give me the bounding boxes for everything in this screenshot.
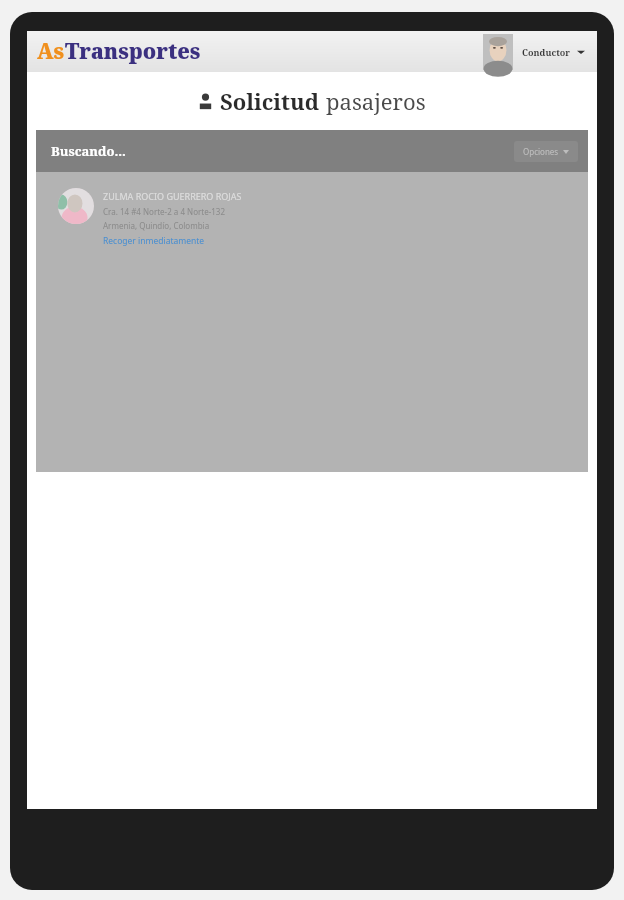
staticText: pasajeros [326, 86, 426, 116]
staticText: Armenia, Quindío, Colombia [103, 220, 210, 231]
button[interactable]: Conductor [483, 34, 589, 70]
button[interactable]: Opciones [514, 141, 578, 162]
staticText: Transportes [65, 37, 201, 66]
staticText: Opciones [523, 146, 559, 157]
button[interactable]: AsTransportes inicio [35, 33, 203, 70]
button[interactable]: ZULMA ROCIO GUERRERO ROJAS [58, 188, 242, 247]
staticText: Solicitud [220, 86, 319, 116]
staticText: Buscando... [51, 142, 126, 160]
staticText: Cra. 14 #4 Norte-2 a 4 Norte-132 [103, 206, 225, 217]
staticText: As [37, 37, 65, 66]
button[interactable]: Recoger inmediatamente [103, 235, 205, 247]
staticText: Conductor [522, 46, 571, 58]
staticText: Recoger inmediatamente [103, 235, 205, 247]
staticText: ZULMA ROCIO GUERRERO ROJAS [103, 190, 242, 202]
